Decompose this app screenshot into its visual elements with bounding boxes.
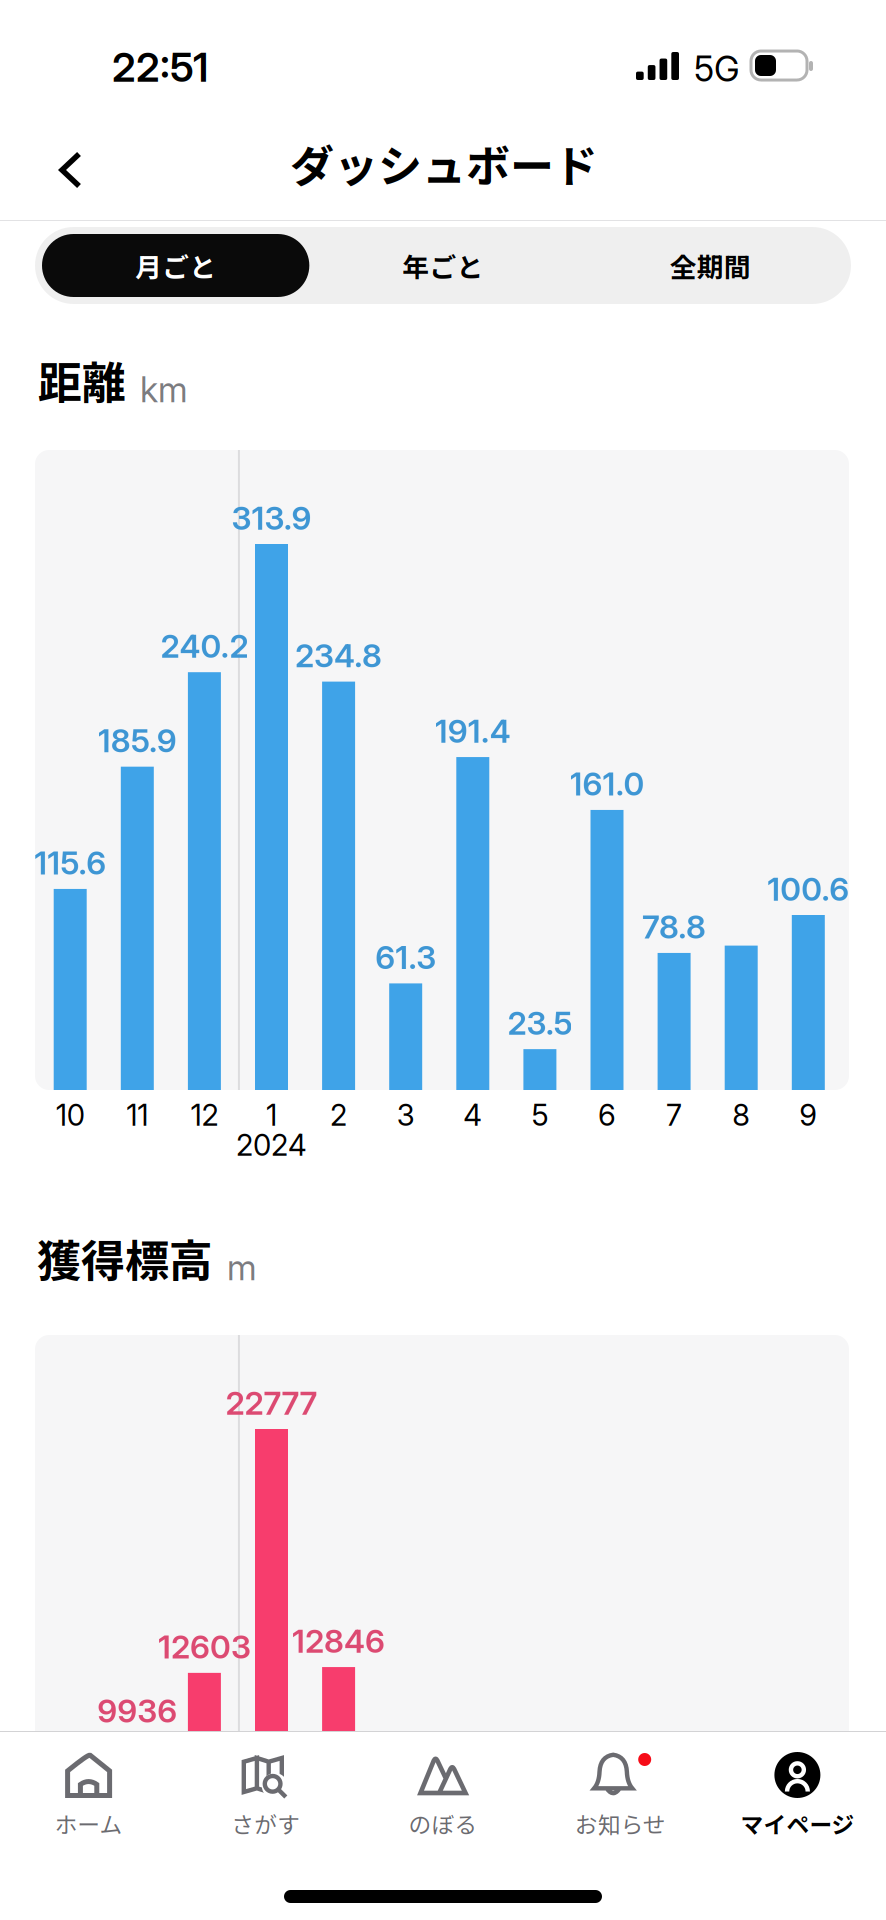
- staticText: 234.8: [295, 636, 382, 675]
- staticText: 61.3: [375, 938, 436, 977]
- staticText: 12: [190, 1097, 218, 1133]
- staticText: 3: [397, 1097, 415, 1133]
- staticText: 161.0: [569, 765, 644, 803]
- button[interactable]: のぼる: [354, 1732, 532, 1850]
- staticText: 5G: [694, 48, 740, 90]
- staticText: ダッシュボード: [290, 131, 598, 195]
- staticText: 7: [666, 1097, 682, 1133]
- staticText: 2024: [236, 1127, 307, 1163]
- staticText: 獲得標高: [37, 1226, 213, 1290]
- staticText: 22:51: [112, 43, 208, 91]
- staticText: 9936: [97, 1691, 177, 1730]
- staticText: 12603: [158, 1627, 251, 1666]
- staticText: マイページ: [740, 1807, 854, 1840]
- staticText: 313.9: [231, 499, 311, 537]
- staticText: 12846: [292, 1622, 385, 1660]
- staticText: 78.8: [642, 908, 706, 946]
- staticText: さがす: [231, 1807, 300, 1840]
- staticText: 5: [531, 1097, 548, 1133]
- staticText: 距離: [38, 348, 126, 412]
- button[interactable]: Back: [32, 128, 109, 212]
- staticText: 4: [463, 1097, 482, 1133]
- staticText: のぼる: [408, 1807, 477, 1840]
- staticText: 1: [266, 1097, 277, 1133]
- staticText: 10: [56, 1097, 85, 1133]
- staticText: km: [140, 369, 188, 411]
- button[interactable]: 月ごと: [42, 234, 309, 297]
- staticText: ホーム: [55, 1807, 123, 1840]
- staticText: 115.6: [34, 844, 106, 882]
- staticText: 240.2: [160, 627, 248, 665]
- staticText: お知らせ: [575, 1807, 666, 1840]
- button[interactable]: 全期間: [577, 234, 844, 297]
- staticText: 9: [799, 1097, 817, 1133]
- staticText: 全期間: [670, 246, 751, 285]
- staticText: m: [227, 1247, 257, 1289]
- staticText: 185.9: [98, 721, 177, 760]
- staticText: 年ごと: [402, 246, 483, 285]
- button[interactable]: ホーム: [0, 1732, 177, 1850]
- staticText: 月ごと: [135, 246, 216, 285]
- staticText: 22777: [225, 1384, 317, 1422]
- button[interactable]: さがす: [177, 1732, 354, 1850]
- staticText: 2: [330, 1097, 347, 1133]
- staticText: 6: [598, 1097, 616, 1133]
- staticText: 191.4: [435, 712, 511, 750]
- staticText: 8: [732, 1097, 750, 1133]
- button[interactable]: 年ごと: [309, 234, 577, 297]
- button[interactable]: マイページ: [709, 1732, 886, 1850]
- staticText: 100.6: [767, 870, 849, 908]
- button[interactable]: お知らせ: [532, 1732, 709, 1850]
- staticText: 11: [126, 1097, 148, 1133]
- staticText: 23.5: [507, 1004, 572, 1042]
